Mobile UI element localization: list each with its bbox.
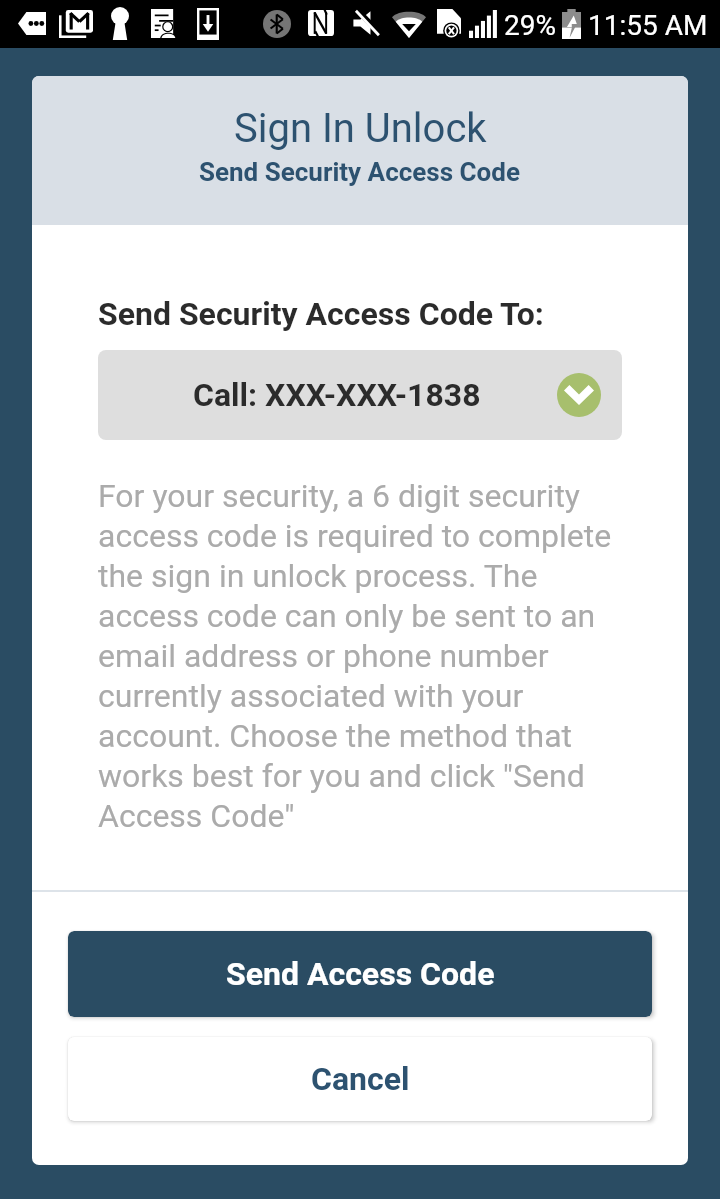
- button[interactable]: Call: XXX-XXX-1838: [98, 350, 622, 440]
- other: Mobile signal: [469, 10, 497, 38]
- button[interactable]: Send Access Code: [68, 931, 652, 1017]
- staticText: Send Security Access Code: [199, 157, 521, 187]
- other: Battery charging, 29 percent: [562, 9, 581, 39]
- staticText: 11:55 AM: [588, 9, 708, 42]
- other: Password manager notification: [111, 8, 129, 40]
- staticText: Call: XXX-XXX-1838: [193, 376, 481, 414]
- button[interactable]: Expand recipient options: [557, 373, 601, 417]
- other: Wi-Fi connected: [392, 10, 426, 38]
- other: Sync error: [437, 9, 461, 40]
- other: Gmail notification: [59, 10, 93, 38]
- other: Messages notification: [18, 12, 46, 35]
- staticText: Sign In Unlock: [234, 105, 487, 152]
- staticText: Send Access Code: [226, 955, 495, 993]
- other: NFC on: [308, 10, 334, 36]
- staticText: 29%: [504, 9, 556, 42]
- staticText: Send Security Access Code To:: [98, 295, 544, 333]
- other: Ringer muted: [352, 10, 380, 36]
- staticText: For your security, a 6 digit security ac…: [98, 477, 622, 834]
- button[interactable]: Cancel: [68, 1037, 652, 1121]
- other: Download notification: [197, 8, 219, 40]
- other: Contact card notification: [151, 9, 178, 38]
- staticText: Cancel: [311, 1060, 410, 1098]
- other: Bluetooth on: [263, 10, 291, 38]
